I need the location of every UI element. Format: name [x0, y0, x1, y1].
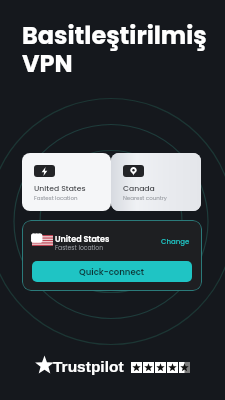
staticText: Nearest country [123, 194, 167, 202]
staticText: Change [161, 237, 190, 247]
staticText: United States [55, 234, 110, 245]
staticText: Canada [123, 183, 155, 194]
button[interactable]: Trustpilot rating [33, 354, 191, 378]
button[interactable]: United States [22, 153, 111, 211]
staticText: Trustpilot [53, 358, 124, 375]
staticText: Fastest location [55, 244, 104, 253]
staticText: VPN [22, 47, 73, 81]
button[interactable]: Canada [111, 153, 201, 211]
staticText: Quick-connect [79, 266, 145, 278]
staticText: Fastest location [34, 194, 78, 202]
staticText: United States [34, 183, 86, 194]
staticText: Basitleştirilmiş [22, 19, 207, 53]
button[interactable]: Change [157, 235, 193, 248]
button[interactable]: Quick-connect [32, 261, 192, 282]
